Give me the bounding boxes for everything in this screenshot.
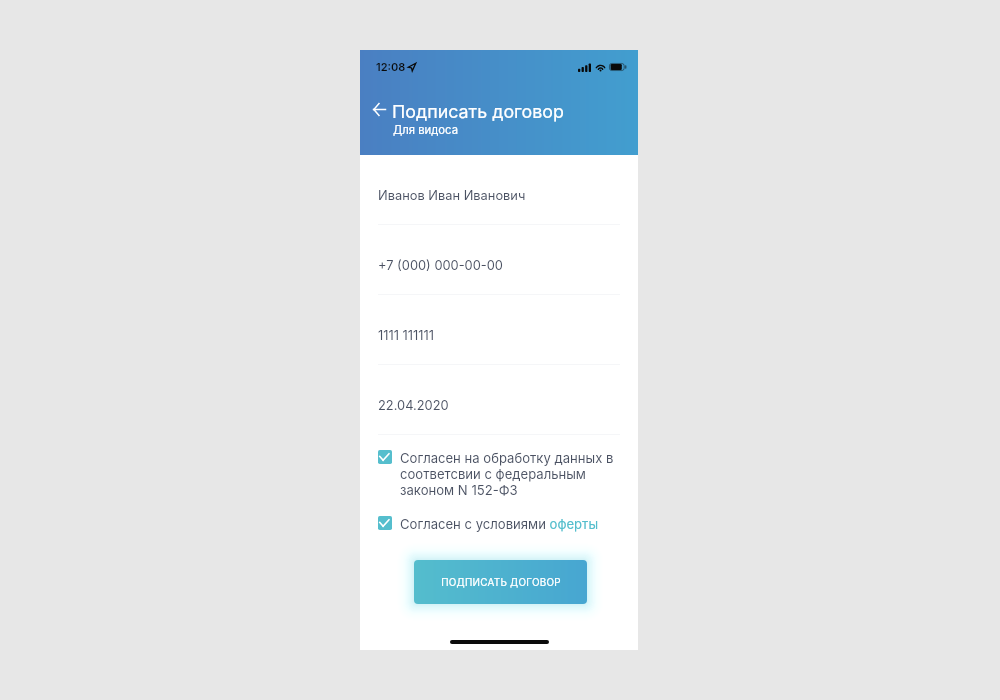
button[interactable]: ПОДПИСАТЬ ДОГОВОР <box>414 560 587 604</box>
staticText: 22.04.2020 <box>378 398 449 414</box>
button[interactable]: +7 (000) 000-00-00 <box>378 244 620 295</box>
button[interactable]: Иванов Иван Иванович <box>378 174 620 225</box>
staticText: Подписать договор <box>392 101 564 123</box>
button[interactable]: Согласен с условиями оферты <box>378 516 619 532</box>
staticText: ПОДПИСАТЬ ДОГОВОР <box>441 576 561 588</box>
staticText: Согласен на обработку данных в соответсв… <box>400 450 619 498</box>
staticText: Согласен с условиями оферты <box>400 516 599 532</box>
staticText: +7 (000) 000-00-00 <box>378 258 503 274</box>
button[interactable]: 1111 111111 <box>378 314 620 365</box>
button[interactable]: Согласен на обработку данных в соответсв… <box>378 450 619 498</box>
button[interactable]: 22.04.2020 <box>378 384 620 435</box>
staticText: 12:08 <box>376 60 406 73</box>
staticText: Иванов Иван Иванович <box>378 188 526 204</box>
button[interactable]: оферты <box>549 516 598 532</box>
button[interactable]: Back <box>373 103 386 116</box>
staticText: 1111 111111 <box>378 328 434 344</box>
staticText: Для видоса <box>393 123 459 137</box>
